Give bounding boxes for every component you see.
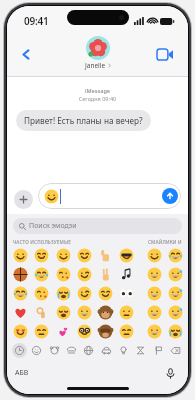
- button[interactable]: Emoji: [166, 322, 184, 340]
- button[interactable]: Emoji: [145, 303, 163, 321]
- button[interactable]: Emoji: [96, 246, 114, 264]
- button[interactable]: Category 6: [116, 343, 131, 358]
- button[interactable]: FaceTime video call: [153, 42, 177, 66]
- button[interactable]: Emoji: [11, 265, 29, 283]
- button[interactable]: Emoji: [166, 284, 184, 302]
- staticText: Поиск эмодзи: [29, 221, 77, 231]
- button[interactable]: Emoji: [117, 246, 135, 264]
- button[interactable]: Emoji: [32, 303, 50, 321]
- button[interactable]: Emoji: [96, 265, 114, 283]
- button[interactable]: Emoji: [75, 246, 93, 264]
- button[interactable]: Dictation: [162, 365, 178, 381]
- button[interactable]: Emoji: [145, 322, 163, 340]
- button[interactable]: Emoji: [54, 303, 72, 321]
- button[interactable]: Back: [15, 43, 37, 65]
- button[interactable]: Emoji: [54, 246, 72, 264]
- button[interactable]: Emoji: [96, 303, 114, 321]
- staticText: СМАЙЛИКИ И: [148, 239, 182, 245]
- button[interactable]: Emoji: [117, 265, 135, 283]
- button[interactable]: Emoji: [11, 322, 29, 340]
- button[interactable]: Привет! Есть планы на вечер?: [16, 110, 151, 131]
- button[interactable]: АБВ: [15, 368, 29, 378]
- button[interactable]: Emoji: [117, 284, 135, 302]
- button[interactable]: Emoji: [96, 284, 114, 302]
- button[interactable]: Emoji: [96, 322, 114, 340]
- button[interactable]: Поиск эмодзи: [13, 218, 182, 234]
- staticText: ЧАСТО ИСПОЛЬЗУЕМЫЕ: [13, 239, 71, 245]
- button[interactable]: Emoji: [166, 303, 184, 321]
- button[interactable]: Emoji: [145, 265, 163, 283]
- button[interactable]: Category 3: [64, 343, 79, 358]
- button[interactable]: Emoji: [117, 322, 135, 340]
- button[interactable]: Emoji: [32, 322, 50, 340]
- button[interactable]: Send: [38, 183, 181, 209]
- button[interactable]: Emoji: [54, 265, 72, 283]
- button[interactable]: Category 1: [29, 343, 44, 358]
- button[interactable]: Emoji: [117, 303, 135, 321]
- button[interactable]: Emoji: [166, 265, 184, 283]
- button[interactable]: Category 4: [81, 343, 96, 358]
- button[interactable]: Emoji: [75, 265, 93, 283]
- button[interactable]: Emoji: [11, 284, 29, 302]
- button[interactable]: Category 0: [12, 343, 27, 358]
- button[interactable]: Add attachment: [14, 190, 33, 209]
- staticText: Janelle: [85, 61, 106, 70]
- button[interactable]: Emoji: [32, 284, 50, 302]
- button[interactable]: Emoji: [32, 265, 50, 283]
- button[interactable]: Emoji: [166, 246, 184, 264]
- staticText: АБВ: [15, 368, 29, 378]
- button[interactable]: Emoji: [11, 303, 29, 321]
- button[interactable]: Send: [162, 188, 178, 204]
- button[interactable]: Emoji: [32, 246, 50, 264]
- button[interactable]: Emoji: [145, 246, 163, 264]
- button[interactable]: Emoji: [145, 284, 163, 302]
- button[interactable]: Category 5: [99, 343, 114, 358]
- staticText: 09:41: [24, 14, 49, 28]
- button[interactable]: Emoji: [75, 322, 93, 340]
- button[interactable]: Category 2: [47, 343, 62, 358]
- button[interactable]: Category 9: [168, 343, 183, 358]
- button[interactable]: Emoji: [75, 303, 93, 321]
- staticText: iMessage: [7, 87, 188, 94]
- button[interactable]: Janelle: [85, 36, 111, 70]
- staticText: Сегодня 09:40: [7, 95, 188, 102]
- button[interactable]: Category 8: [151, 343, 166, 358]
- button[interactable]: Category 7: [133, 343, 148, 358]
- button[interactable]: Emoji: [75, 284, 93, 302]
- staticText: Привет! Есть планы на вечер?: [24, 115, 143, 126]
- button[interactable]: Emoji: [54, 284, 72, 302]
- button[interactable]: Emoji: [11, 246, 29, 264]
- button[interactable]: Emoji: [54, 322, 72, 340]
